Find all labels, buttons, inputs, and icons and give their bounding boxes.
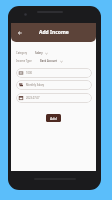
staticText: Salary [35,51,43,55]
staticText: 2023-07-07 [26,96,40,100]
staticText: Add Income [39,29,69,36]
staticText: Income Type [16,59,32,63]
button[interactable]: Back [14,28,24,38]
staticText: Add [50,116,57,121]
button[interactable]: Category [16,50,91,56]
staticText: Monthly Salary [26,83,45,87]
button[interactable]: 1000 [16,68,92,78]
button[interactable]: Add [46,114,61,122]
button[interactable]: Income Type [16,58,91,64]
button[interactable]: Monthly Salary [16,80,92,90]
staticText: Bank Account [40,59,58,63]
button[interactable]: 2023-07-07 [16,93,92,103]
staticText: Category [16,51,28,55]
staticText: 1000 [26,71,32,75]
